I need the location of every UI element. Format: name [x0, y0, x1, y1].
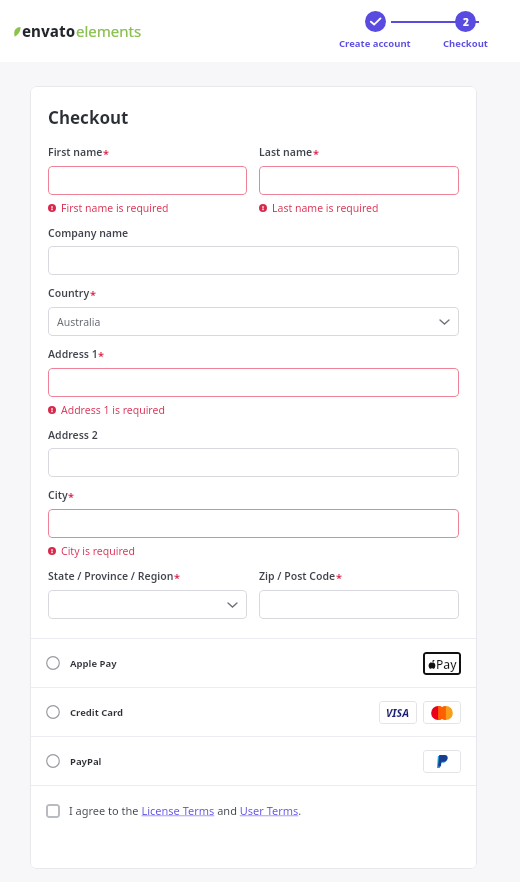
staticText: Pay	[436, 656, 457, 672]
button[interactable]: PayPal	[423, 750, 461, 773]
button[interactable]: PayPal	[30, 737, 477, 785]
staticText: Company name	[48, 226, 129, 240]
staticText: City is required	[61, 544, 135, 558]
staticText: First name	[48, 145, 103, 159]
staticText: Country	[48, 286, 90, 300]
staticText: Address 1	[48, 347, 98, 361]
staticText: elements	[76, 21, 142, 41]
staticText: 2	[463, 15, 469, 29]
staticText: *	[98, 348, 104, 363]
staticText: Last name is required	[272, 201, 379, 215]
button[interactable]: Envato Elements home	[13, 21, 142, 41]
button[interactable]: I agree to the License Terms and User Te…	[30, 786, 477, 835]
staticText: Apple Pay	[70, 657, 117, 670]
staticText: PayPal	[70, 755, 102, 768]
staticText: Address 1 is required	[61, 403, 165, 417]
staticText: City	[48, 488, 68, 502]
button[interactable]: First name	[48, 166, 247, 195]
button[interactable]: City	[48, 509, 459, 538]
staticText: Address 2	[48, 428, 98, 442]
button[interactable]: Apple Pay	[30, 639, 477, 687]
staticText: *	[313, 146, 319, 161]
staticText: envato	[22, 21, 76, 41]
button[interactable]: Company name	[48, 246, 459, 275]
staticText: State / Province / Region	[48, 569, 174, 583]
staticText: Create account	[339, 37, 411, 50]
button[interactable]: 2	[420, 11, 510, 50]
button[interactable]: Country	[48, 307, 459, 336]
staticText: *	[103, 146, 109, 161]
staticText: *	[68, 489, 74, 504]
staticText: *	[90, 287, 96, 302]
staticText: First name is required	[61, 201, 169, 215]
button[interactable]: Address 2	[48, 448, 459, 477]
staticText: Zip / Post Code	[259, 569, 336, 583]
staticText: Australia	[57, 315, 101, 329]
button[interactable]: Mastercard	[423, 701, 461, 724]
staticText: Last name	[259, 145, 313, 159]
staticText: Checkout	[443, 37, 488, 50]
staticText: *	[336, 570, 342, 585]
button[interactable]: Credit Card	[30, 688, 477, 736]
staticText: I agree to the License Terms and User Te…	[69, 803, 302, 818]
button[interactable]: Last name	[259, 166, 459, 195]
button[interactable]: State / Province / Region	[48, 590, 247, 619]
button[interactable]: Apple Pay	[423, 652, 461, 675]
staticText: Credit Card	[70, 706, 124, 719]
staticText: Checkout	[48, 106, 129, 129]
button[interactable]: Create account	[330, 11, 420, 50]
staticText: *	[174, 570, 180, 585]
staticText: VISA	[386, 706, 410, 720]
button[interactable]: Visa	[379, 701, 417, 724]
button[interactable]: Address 1	[48, 368, 459, 397]
button[interactable]: Zip / Post Code	[259, 590, 459, 619]
